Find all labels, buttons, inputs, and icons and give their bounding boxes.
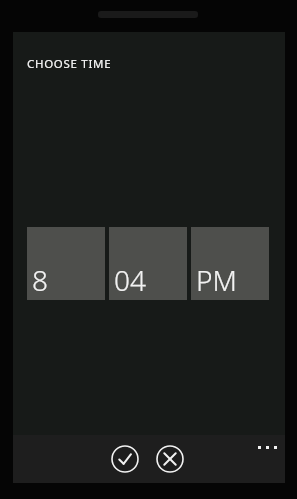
button[interactable]: Accept xyxy=(111,445,139,473)
button[interactable]: PM xyxy=(191,227,269,300)
button[interactable]: 8 xyxy=(27,227,105,300)
staticText: PM xyxy=(196,261,237,299)
button[interactable]: Cancel xyxy=(156,445,184,473)
staticText: 04 xyxy=(114,261,146,299)
staticText: CHOOSE TIME xyxy=(27,56,112,72)
staticText: 8 xyxy=(32,261,48,299)
button[interactable]: 04 xyxy=(109,227,187,300)
button[interactable]: More options xyxy=(249,435,285,459)
